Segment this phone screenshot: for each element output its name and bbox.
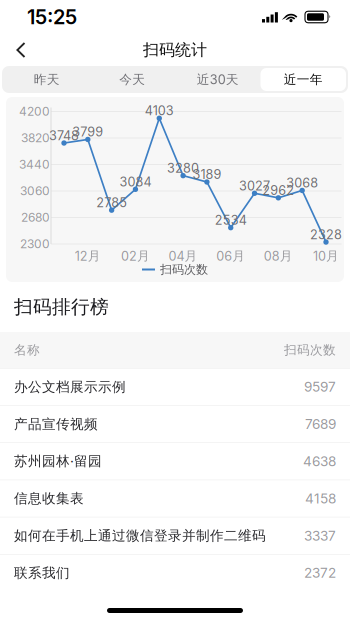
staticText: 3060	[20, 184, 50, 198]
staticText: 2680	[21, 210, 50, 225]
staticText: 名称	[14, 342, 40, 358]
staticText: 4158	[305, 490, 336, 507]
staticText: 扫码次数	[284, 342, 336, 358]
button[interactable]: 返回	[0, 34, 42, 66]
staticText: 3027	[239, 178, 270, 193]
staticText: 3084	[119, 174, 151, 189]
staticText: 产品宣传视频	[14, 415, 98, 433]
staticText: 3337	[304, 527, 336, 544]
staticText: 4638	[303, 453, 336, 470]
button[interactable]: 今天	[89, 68, 175, 91]
staticText: 06月	[216, 248, 245, 264]
button[interactable]: 近一年	[260, 68, 346, 91]
staticText: 2372	[304, 565, 336, 581]
staticText: 扫码排行榜	[14, 295, 109, 319]
staticText: 3280	[167, 160, 199, 176]
staticText: 10月	[313, 248, 339, 264]
staticText: 扫码次数	[160, 262, 208, 277]
staticText: 12月	[75, 248, 101, 264]
staticText: 苏州园林·留园	[14, 453, 102, 470]
staticText: 今天	[119, 71, 145, 87]
button[interactable]: 办公文档展示示例	[0, 368, 350, 405]
staticText: 3440	[19, 157, 50, 172]
staticText: 2962	[262, 183, 294, 198]
staticText: 联系我们	[14, 564, 70, 581]
button[interactable]: 联系我们	[0, 554, 350, 591]
staticText: 15:25	[27, 5, 77, 29]
staticText: 02月	[121, 248, 150, 264]
staticText: 04月	[169, 248, 198, 264]
staticText: 近一年	[284, 71, 323, 87]
button[interactable]: 如何在手机上通过微信登录并制作二维码	[0, 517, 350, 554]
staticText: 昨天	[34, 71, 60, 87]
staticText: 近30天	[197, 71, 239, 87]
staticText: 3820	[21, 131, 50, 145]
staticText: 2534	[215, 212, 247, 228]
button[interactable]: 苏州园林·留园	[0, 442, 350, 480]
staticText: 9597	[304, 379, 336, 395]
button[interactable]: 昨天	[4, 68, 89, 91]
staticText: 如何在手机上通过微信登录并制作二维码	[14, 527, 266, 544]
staticText: 2328	[310, 227, 342, 242]
staticText: 扫码统计	[143, 40, 207, 60]
staticText: 3748	[49, 128, 79, 143]
button[interactable]: 产品宣传视频	[0, 405, 350, 442]
staticText: 2785	[96, 195, 127, 210]
staticText: 3799	[72, 124, 103, 140]
staticText: 4200	[19, 104, 50, 119]
button[interactable]: 近30天	[175, 68, 260, 91]
staticText: 2300	[20, 237, 50, 251]
button[interactable]: 信息收集表	[0, 480, 350, 517]
staticText: 信息收集表	[14, 490, 84, 507]
staticText: 7689	[305, 416, 336, 432]
staticText: 办公文档展示示例	[14, 378, 126, 395]
staticText: 08月	[264, 248, 293, 264]
staticText: 3068	[286, 175, 318, 191]
staticText: 4103	[145, 103, 174, 118]
staticText: 3189	[192, 167, 221, 182]
